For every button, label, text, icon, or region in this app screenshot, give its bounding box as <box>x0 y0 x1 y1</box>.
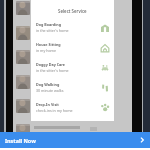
button[interactable]: Doggy Day Care <box>31 57 114 77</box>
staticText: Dog Walking <box>36 82 60 87</box>
button[interactable]: Drop-In Visit <box>31 97 114 117</box>
button[interactable]: House Sitting <box>31 37 114 57</box>
staticText: check-ins in my home <box>36 108 73 113</box>
staticText: Drop-In Visit <box>36 102 59 107</box>
staticText: Dog Boarding <box>36 22 61 27</box>
staticText: Select Service <box>58 8 87 14</box>
staticText: in the sitter's home <box>36 68 69 73</box>
button[interactable]: Dog Boarding <box>31 17 114 37</box>
staticText: in the sitter's home <box>36 28 69 33</box>
other: Open <box>139 137 145 143</box>
staticText: Doggy Day Care <box>36 62 66 67</box>
button[interactable]: Install Now <box>0 132 150 148</box>
staticText: in my home <box>36 48 56 53</box>
staticText: House Sitting <box>36 42 61 47</box>
staticText: Install Now <box>5 137 36 144</box>
button[interactable]: Dog Walking <box>31 77 114 97</box>
staticText: 30 minute walks <box>36 88 64 93</box>
